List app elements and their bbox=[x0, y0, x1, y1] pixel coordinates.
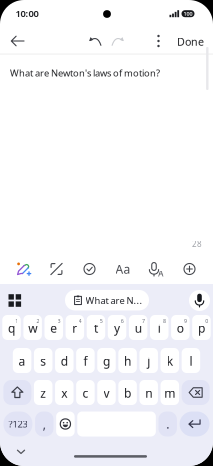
staticText: q bbox=[8, 320, 15, 336]
staticText: z bbox=[40, 385, 46, 401]
button[interactable]: i bbox=[150, 315, 168, 340]
button[interactable]: o bbox=[171, 315, 190, 340]
staticText: r bbox=[72, 320, 77, 336]
button[interactable]: v bbox=[97, 380, 116, 405]
staticText: m bbox=[164, 385, 175, 401]
staticText: i bbox=[158, 320, 161, 336]
button[interactable]: m bbox=[160, 380, 179, 405]
staticText: 7 bbox=[142, 317, 145, 325]
button[interactable]: Magic compose bbox=[11, 256, 36, 281]
button[interactable]: Back bbox=[4, 30, 30, 52]
staticText: 10:00 bbox=[15, 7, 38, 20]
button[interactable]: Backspace bbox=[182, 380, 210, 405]
button[interactable]: g bbox=[97, 348, 116, 373]
button[interactable]: Hide keyboard bbox=[12, 445, 29, 459]
button[interactable]: More options bbox=[151, 29, 166, 53]
button[interactable]: Voice typing bbox=[145, 258, 168, 281]
button[interactable]: p bbox=[192, 315, 211, 340]
button[interactable]: y bbox=[108, 315, 126, 340]
staticText: k bbox=[167, 353, 173, 369]
button[interactable]: Shift bbox=[3, 380, 31, 405]
staticText: g bbox=[103, 353, 110, 369]
staticText: 6 bbox=[121, 317, 124, 325]
staticText: l bbox=[189, 353, 192, 369]
staticText: ?123 bbox=[8, 418, 27, 430]
button[interactable]: Add bbox=[178, 258, 200, 280]
staticText: . bbox=[166, 416, 169, 432]
button[interactable]: Open features menu bbox=[4, 290, 25, 311]
staticText: p bbox=[198, 320, 205, 336]
button[interactable]: d bbox=[55, 348, 73, 373]
staticText: 2 bbox=[36, 317, 39, 325]
button[interactable]: l bbox=[182, 348, 200, 373]
staticText: t bbox=[94, 320, 98, 336]
button[interactable]: u bbox=[129, 315, 147, 340]
button[interactable]: h bbox=[118, 348, 137, 373]
staticText: 4 bbox=[79, 317, 82, 325]
staticText: v bbox=[103, 385, 109, 401]
staticText: f bbox=[83, 353, 87, 369]
button[interactable]: Drawing off bbox=[45, 258, 67, 280]
button[interactable]: j bbox=[139, 348, 158, 373]
staticText: c bbox=[82, 385, 88, 401]
button[interactable]: Emoji bbox=[56, 411, 75, 436]
button[interactable]: t bbox=[87, 315, 105, 340]
staticText: 1 bbox=[15, 317, 18, 325]
staticText: n bbox=[145, 385, 152, 401]
staticText: 8 bbox=[163, 317, 166, 325]
button[interactable]: Text style bbox=[111, 257, 134, 281]
button[interactable]: n bbox=[139, 380, 158, 405]
button[interactable]: x bbox=[55, 380, 73, 405]
button[interactable]: z bbox=[34, 380, 52, 405]
button[interactable]: a bbox=[13, 348, 31, 373]
button[interactable]: Undo bbox=[84, 31, 106, 50]
button[interactable]: s bbox=[34, 348, 52, 373]
staticText: h bbox=[124, 353, 131, 369]
staticText: 3 bbox=[57, 317, 60, 325]
staticText: d bbox=[61, 353, 68, 369]
staticText: 28 bbox=[192, 239, 202, 249]
button[interactable]: Period bbox=[158, 411, 177, 436]
staticText: u bbox=[135, 320, 142, 336]
button[interactable]: w bbox=[23, 315, 42, 340]
staticText: 5 bbox=[100, 317, 103, 325]
button[interactable]: Done bbox=[173, 30, 208, 53]
staticText: 9 bbox=[184, 317, 187, 325]
staticText: What are Newton's laws of motion? bbox=[10, 67, 160, 79]
button[interactable]: Voice input bbox=[189, 290, 210, 311]
staticText: j bbox=[147, 353, 150, 369]
staticText: a bbox=[19, 353, 26, 369]
staticText: Done bbox=[177, 34, 204, 49]
staticText: 0 bbox=[205, 317, 208, 325]
button[interactable]: Comma bbox=[35, 411, 54, 436]
button[interactable]: Redo bbox=[106, 31, 128, 50]
staticText: , bbox=[43, 416, 46, 432]
button[interactable]: c bbox=[76, 380, 95, 405]
staticText: 100 bbox=[183, 10, 192, 17]
staticText: e bbox=[50, 320, 57, 336]
button[interactable]: Return bbox=[180, 411, 210, 436]
button[interactable]: f bbox=[76, 348, 95, 373]
staticText: What are N... bbox=[85, 294, 142, 307]
button[interactable]: e bbox=[44, 315, 63, 340]
staticText: x bbox=[61, 385, 67, 401]
staticText: b bbox=[124, 385, 131, 401]
button[interactable]: Checklist bbox=[78, 258, 100, 280]
staticText: s bbox=[40, 353, 46, 369]
button[interactable]: Symbols bbox=[3, 411, 32, 436]
button[interactable]: r bbox=[66, 315, 84, 340]
staticText: y bbox=[114, 320, 120, 336]
staticText: Aa bbox=[115, 261, 130, 277]
button[interactable]: k bbox=[160, 348, 179, 373]
button[interactable]: b bbox=[118, 380, 137, 405]
button[interactable]: q bbox=[2, 315, 21, 340]
staticText: o bbox=[177, 320, 184, 336]
staticText: w bbox=[28, 320, 37, 336]
button[interactable]: Paste clipboard suggestion bbox=[65, 290, 149, 310]
staticText: A bbox=[158, 268, 163, 279]
